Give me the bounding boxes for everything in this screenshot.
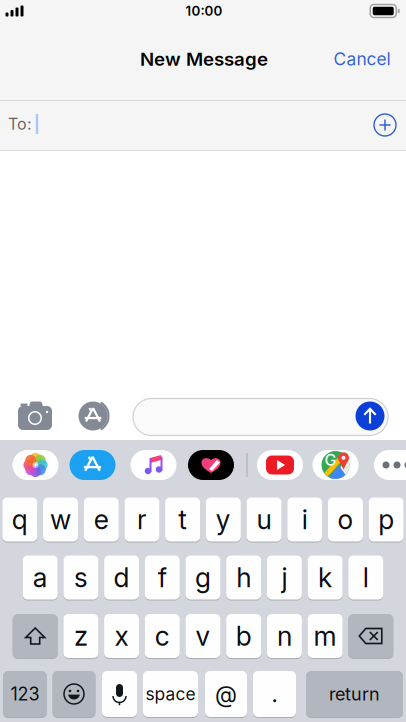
- staticText: d: [114, 561, 130, 594]
- staticText: return: [329, 683, 380, 705]
- staticText: t: [178, 503, 187, 536]
- staticText: .: [271, 680, 277, 708]
- staticText: k: [318, 561, 332, 594]
- staticText: To:: [8, 114, 32, 134]
- button[interactable]: App Store: [75, 399, 111, 433]
- button[interactable]: y: [206, 497, 241, 542]
- staticText: n: [277, 620, 292, 652]
- staticText: h: [236, 561, 251, 594]
- staticText: f: [158, 561, 167, 594]
- button[interactable]: u: [246, 497, 281, 542]
- button[interactable]: s: [63, 555, 98, 600]
- staticText: c: [155, 620, 170, 652]
- staticText: a: [33, 561, 48, 594]
- button[interactable]: a: [23, 555, 58, 600]
- staticText: New Message: [140, 48, 268, 70]
- button[interactable]: Send: [355, 401, 384, 430]
- staticText: G: [324, 450, 336, 470]
- button[interactable]: p: [369, 497, 404, 542]
- button[interactable]: b: [226, 613, 261, 658]
- button[interactable]: return: [306, 670, 403, 717]
- button[interactable]: [348, 613, 393, 658]
- button[interactable]: r: [124, 497, 159, 542]
- button[interactable]: YouTube: [257, 450, 303, 480]
- button[interactable]: o: [328, 497, 363, 542]
- button[interactable]: Cancel: [325, 37, 399, 81]
- button[interactable]: App Store: [69, 450, 115, 480]
- staticText: 123: [10, 683, 39, 705]
- staticText: u: [256, 503, 271, 536]
- button[interactable]: f: [145, 555, 180, 600]
- button[interactable]: z: [63, 613, 98, 658]
- button[interactable]: v: [185, 613, 220, 658]
- staticText: p: [378, 503, 394, 536]
- staticText: r: [137, 503, 147, 536]
- staticText: m: [314, 620, 337, 652]
- button[interactable]: Take photo: [17, 401, 53, 431]
- button[interactable]: k: [308, 555, 343, 600]
- staticText: @: [215, 680, 237, 708]
- button[interactable]: q: [2, 497, 37, 542]
- button[interactable]: g: [185, 555, 220, 600]
- staticText: q: [12, 503, 28, 536]
- button[interactable]: [52, 670, 95, 717]
- staticText: y: [216, 503, 231, 536]
- staticText: b: [236, 620, 252, 652]
- button[interactable]: [102, 670, 137, 717]
- button[interactable]: Music: [130, 450, 176, 480]
- staticText: w: [50, 503, 71, 536]
- staticText: e: [94, 503, 109, 536]
- button[interactable]: Digital Touch: [188, 450, 234, 480]
- button[interactable]: More apps: [374, 450, 406, 480]
- staticText: x: [115, 620, 129, 652]
- staticText: i: [302, 503, 308, 536]
- button[interactable]: space: [143, 670, 198, 717]
- button[interactable]: x: [104, 613, 139, 658]
- button[interactable]: [13, 613, 58, 658]
- button[interactable]: Photos: [12, 450, 58, 480]
- button[interactable]: .: [253, 670, 296, 717]
- staticText: 10:00: [185, 3, 222, 19]
- button[interactable]: d: [104, 555, 139, 600]
- button[interactable]: l: [348, 555, 383, 600]
- staticText: s: [74, 561, 88, 594]
- button[interactable]: i: [287, 497, 322, 542]
- button[interactable]: h: [226, 555, 261, 600]
- button[interactable]: j: [267, 555, 302, 600]
- staticText: v: [195, 620, 210, 652]
- staticText: z: [74, 620, 88, 652]
- button[interactable]: m: [308, 613, 343, 658]
- staticText: o: [337, 503, 353, 536]
- staticText: l: [363, 561, 369, 594]
- button[interactable]: 123: [3, 670, 47, 717]
- button[interactable]: t: [165, 497, 200, 542]
- staticText: g: [195, 561, 211, 594]
- button[interactable]: n: [267, 613, 302, 658]
- button[interactable]: @: [205, 670, 247, 717]
- button[interactable]: e: [84, 497, 119, 542]
- button[interactable]: Add contact: [368, 108, 402, 142]
- button[interactable]: c: [145, 613, 180, 658]
- button[interactable]: w: [43, 497, 78, 542]
- staticText: space: [145, 683, 195, 704]
- button[interactable]: Google Maps: [312, 450, 358, 480]
- staticText: j: [281, 561, 287, 594]
- staticText: Cancel: [333, 48, 390, 69]
